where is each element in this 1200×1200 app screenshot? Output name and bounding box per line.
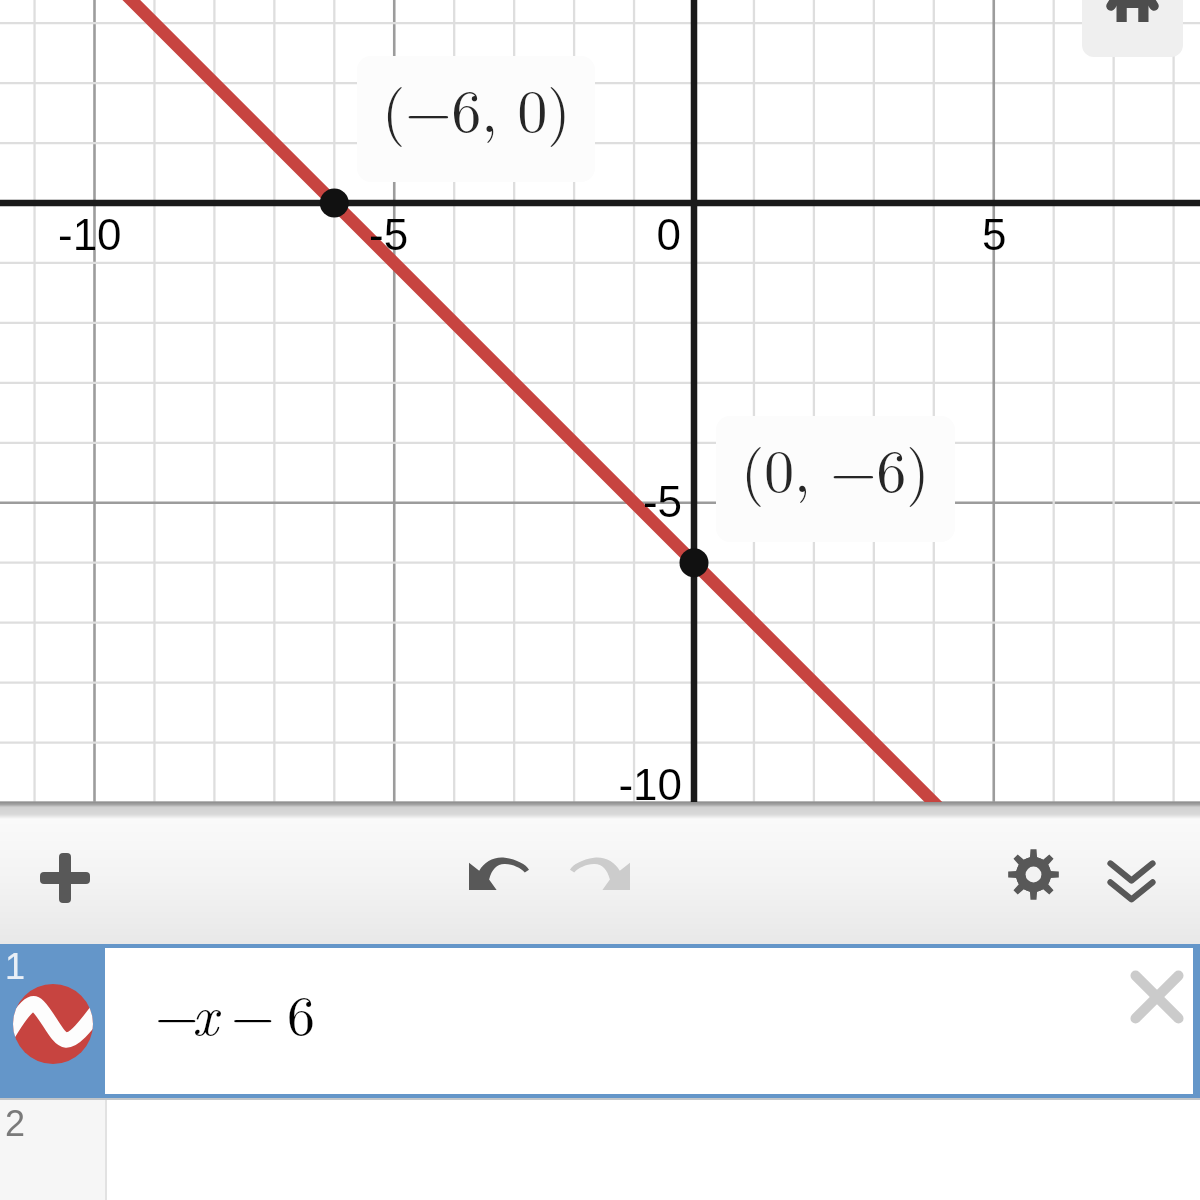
staticText: -10 — [58, 210, 122, 259]
staticText: − — [231, 972, 275, 1051]
staticText: -5 — [522, 477, 682, 526]
staticText: -5 — [369, 210, 409, 259]
button[interactable]: Redo — [570, 856, 630, 891]
staticText: 6 — [287, 972, 315, 1051]
button[interactable]: Collapse keypad — [1107, 858, 1156, 903]
staticText: (0, −6) — [741, 425, 930, 509]
staticText: x — [192, 972, 218, 1051]
staticText: 2 — [5, 1103, 26, 1143]
staticText: − — [155, 972, 199, 1051]
button[interactable]: Settings — [1008, 849, 1059, 900]
button[interactable]: Undo — [469, 856, 529, 891]
staticText: -10 — [522, 760, 682, 809]
button[interactable]: Add expression — [29, 842, 101, 914]
staticText: 0 — [621, 210, 681, 259]
staticText: (−6, 0) — [382, 65, 571, 149]
staticText: 1 — [5, 946, 26, 986]
button[interactable]: 2 — [0, 1100, 1200, 1200]
staticText: 5 — [982, 210, 1007, 259]
button[interactable]: 1 — [0, 944, 1200, 1098]
button[interactable]: Delete expression — [1128, 968, 1186, 1026]
button[interactable]: Home — [1082, 0, 1183, 57]
